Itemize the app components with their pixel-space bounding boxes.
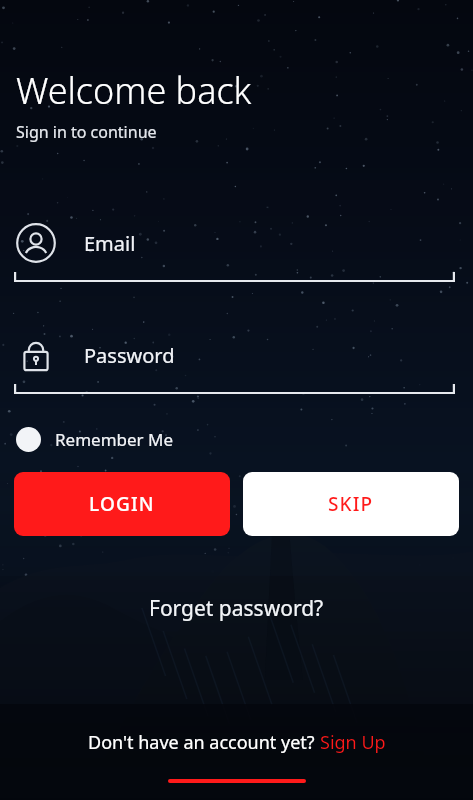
staticText: Don't have an account yet? <box>88 730 320 755</box>
staticText: Remember Me <box>55 428 174 451</box>
staticText: Forget password? <box>149 594 324 623</box>
other: Email <box>16 223 56 263</box>
button[interactable]: Sign Up <box>320 730 386 755</box>
button[interactable]: Email <box>0 223 473 283</box>
staticText: Sign Up <box>320 730 386 755</box>
staticText: Password <box>84 342 175 369</box>
button[interactable]: Remember Me <box>14 421 176 458</box>
staticText: Email <box>84 230 136 257</box>
other: Password <box>16 335 56 375</box>
button[interactable]: LOGIN <box>14 472 230 536</box>
staticText: Sign in to continue <box>16 121 157 143</box>
button[interactable]: Password <box>0 335 473 395</box>
staticText: SKIP <box>328 491 374 517</box>
button[interactable]: Forget password? <box>0 594 473 623</box>
staticText: Welcome back <box>16 66 252 115</box>
button[interactable]: SKIP <box>243 472 459 536</box>
staticText: LOGIN <box>89 491 155 517</box>
